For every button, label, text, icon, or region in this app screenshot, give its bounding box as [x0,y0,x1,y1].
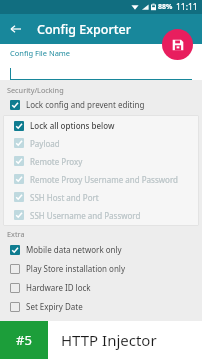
button[interactable]: Mobile data network only [0,240,202,259]
button[interactable]: Hardware ID lock [0,278,202,297]
button[interactable]: Lock config and prevent editing [0,96,202,113]
staticText: SSH Username and Password [30,210,141,221]
button[interactable]: Play Store installation only [0,259,202,278]
staticText: Security/Locking [7,85,64,95]
staticText: #5 [16,331,32,349]
staticText: Config File Name [10,48,71,58]
button[interactable]: SIM along hardware ID [0,316,202,335]
button[interactable]: Back [8,21,24,37]
staticText: Lock config and prevent editing [26,99,145,110]
button[interactable]: SSH Host and Port [3,188,199,206]
staticText: Remote Proxy Username and Password [30,174,178,185]
staticText: 11:11 [176,1,198,13]
staticText: Play Store installation only [26,263,125,274]
staticText: Extra [7,229,25,239]
button[interactable]: SSH Username and Password [3,206,199,224]
button[interactable]: Remote Proxy Username and Password [3,170,199,188]
staticText: Payload [30,138,60,149]
staticText: SIM along hardware ID [26,320,113,331]
staticText: 88% [158,2,173,12]
staticText: SSH Host and Port [30,192,99,203]
staticText: Set Expiry Date [26,301,83,312]
staticText: Config Exporter [37,21,131,38]
button[interactable]: Save config [162,29,193,60]
staticText: Hardware ID lock [26,282,91,293]
staticText: Lock all options below [30,120,115,131]
staticText: HTTP Injector [61,330,157,350]
staticText: Remote Proxy [30,156,83,167]
button[interactable]: Remote Proxy [3,152,199,170]
staticText: Mobile data network only [26,244,122,255]
button[interactable]: Payload [3,134,199,152]
button[interactable]: Set Expiry Date [0,297,202,316]
button[interactable]: Lock all options below [3,117,199,134]
